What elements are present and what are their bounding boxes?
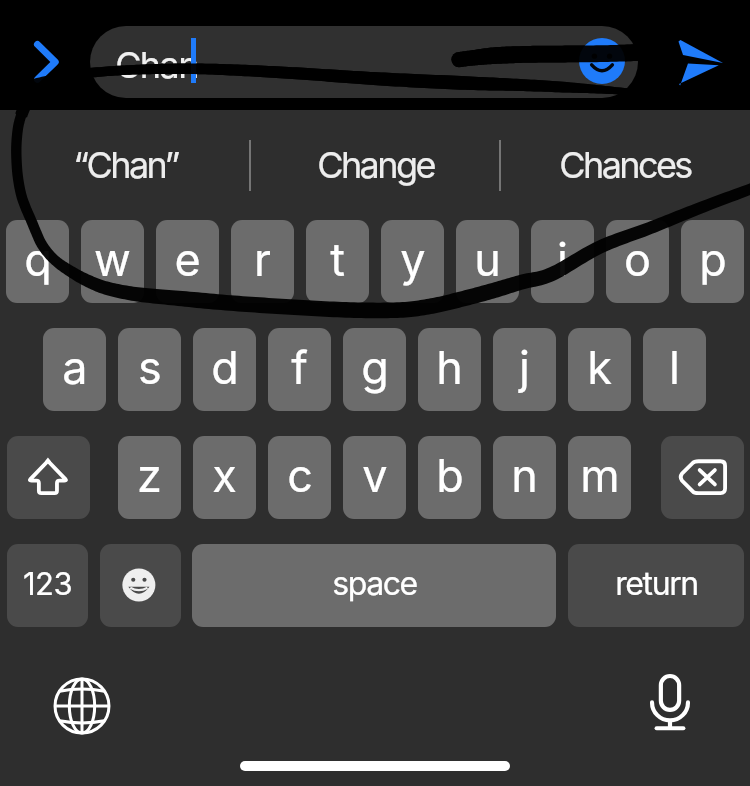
- staticText: o: [624, 232, 651, 286]
- button[interactable]: Send: [666, 29, 732, 95]
- button[interactable]: i: [531, 220, 594, 303]
- staticText: n: [511, 448, 538, 502]
- staticText: h: [436, 340, 463, 394]
- staticText: Change: [317, 143, 434, 187]
- staticText: x: [212, 448, 237, 502]
- button[interactable]: c: [268, 436, 331, 519]
- button[interactable]: Next: [14, 28, 78, 92]
- button[interactable]: Shift: [7, 436, 90, 519]
- staticText: m: [580, 448, 620, 502]
- staticText: j: [519, 340, 530, 394]
- button[interactable]: m: [568, 436, 631, 519]
- button[interactable]: Backspace: [661, 436, 744, 519]
- staticText: g: [361, 340, 389, 394]
- button[interactable]: Change: [250, 110, 500, 220]
- button[interactable]: f: [268, 328, 331, 411]
- button[interactable]: j: [493, 328, 556, 411]
- button[interactable]: k: [568, 328, 631, 411]
- staticText: Chan: [115, 43, 198, 87]
- button[interactable]: u: [456, 220, 519, 303]
- staticText: return: [615, 564, 698, 603]
- button[interactable]: Emoji keyboard: [100, 544, 181, 627]
- button[interactable]: 123: [7, 544, 88, 627]
- staticText: “Chan”: [73, 143, 178, 187]
- staticText: p: [699, 232, 727, 286]
- button[interactable]: return: [568, 544, 744, 627]
- staticText: d: [211, 340, 239, 394]
- staticText: z: [137, 448, 162, 502]
- staticText: r: [254, 232, 271, 286]
- staticText: k: [587, 340, 612, 394]
- button[interactable]: w: [81, 220, 144, 303]
- staticText: v: [362, 448, 388, 502]
- button[interactable]: z: [118, 436, 181, 519]
- button[interactable]: Emoji: [579, 38, 625, 84]
- button[interactable]: t: [306, 220, 369, 303]
- button[interactable]: y: [381, 220, 444, 303]
- button[interactable]: p: [681, 220, 744, 303]
- button[interactable]: “Chan”: [0, 110, 250, 220]
- staticText: c: [287, 448, 313, 502]
- staticText: u: [474, 232, 501, 286]
- staticText: t: [330, 232, 345, 286]
- button[interactable]: Chances: [500, 110, 750, 220]
- button[interactable]: d: [193, 328, 256, 411]
- staticText: w: [94, 232, 131, 286]
- button[interactable]: space: [192, 544, 556, 627]
- button[interactable]: Change language: [53, 677, 111, 735]
- button[interactable]: o: [606, 220, 669, 303]
- button[interactable]: a: [43, 328, 106, 411]
- staticText: Chances: [559, 143, 691, 187]
- button[interactable]: [90, 26, 638, 98]
- button[interactable]: q: [6, 220, 69, 303]
- button[interactable]: l: [643, 328, 706, 411]
- staticText: s: [138, 340, 162, 394]
- button[interactable]: Dictate: [641, 674, 699, 732]
- staticText: q: [24, 232, 52, 286]
- button[interactable]: g: [343, 328, 406, 411]
- button[interactable]: e: [156, 220, 219, 303]
- button[interactable]: r: [231, 220, 294, 303]
- staticText: b: [436, 448, 464, 502]
- button[interactable]: x: [193, 436, 256, 519]
- staticText: 123: [23, 565, 72, 603]
- button[interactable]: v: [343, 436, 406, 519]
- staticText: e: [174, 232, 201, 286]
- staticText: f: [291, 340, 308, 394]
- staticText: space: [332, 564, 417, 603]
- button[interactable]: b: [418, 436, 481, 519]
- button[interactable]: n: [493, 436, 556, 519]
- button[interactable]: s: [118, 328, 181, 411]
- staticText: a: [62, 340, 88, 394]
- button[interactable]: h: [418, 328, 481, 411]
- staticText: l: [669, 340, 680, 394]
- staticText: i: [557, 232, 568, 286]
- staticText: y: [400, 232, 426, 286]
